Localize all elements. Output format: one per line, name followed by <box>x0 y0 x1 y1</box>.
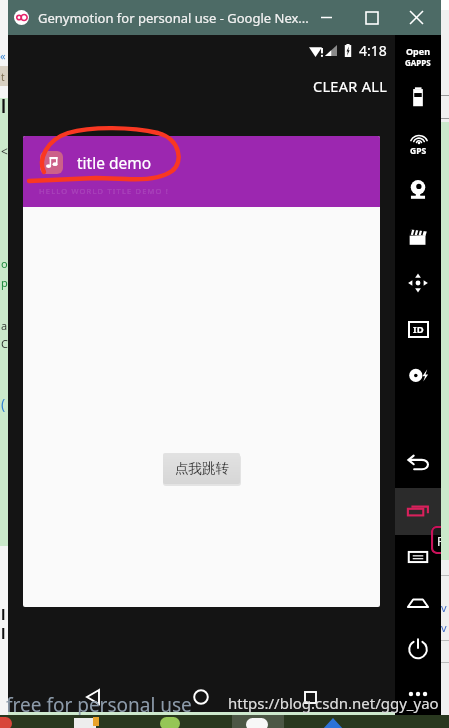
staticText: Open <box>406 45 431 57</box>
button[interactable]: GPS <box>395 123 441 169</box>
button[interactable]: 点我跳转 <box>163 453 240 484</box>
staticText: < <box>1 143 8 159</box>
staticText: ( <box>1 394 6 413</box>
staticText: Re <box>437 533 449 549</box>
staticText: t <box>1 70 5 84</box>
staticText: Genymotion for personal use - Google Nex… <box>38 9 309 27</box>
button[interactable]: Identifiers <box>395 306 441 352</box>
staticText: 点我跳转 <box>175 460 229 477</box>
staticText: o <box>1 256 8 271</box>
button[interactable]: Multi window <box>395 488 441 534</box>
button[interactable]: Screen recorder <box>395 213 441 259</box>
button[interactable]: Home <box>181 677 221 717</box>
staticText: ID <box>413 323 424 336</box>
staticText: l <box>1 623 6 643</box>
button[interactable]: Camera <box>395 167 441 213</box>
staticText: free for personal use <box>6 692 192 718</box>
button[interactable]: Volume <box>395 580 441 626</box>
button[interactable]: Open GApps <box>395 41 441 71</box>
staticText: GAPPS <box>405 57 431 68</box>
staticText: C <box>1 336 8 351</box>
button[interactable]: Back <box>73 677 113 717</box>
staticText: p <box>1 275 8 290</box>
button[interactable]: Menu <box>395 534 441 580</box>
staticText: l <box>1 95 7 118</box>
staticText: 4:18 <box>359 41 387 60</box>
button[interactable]: title demo <box>23 136 380 607</box>
staticText: HELLO WORLD TITLE DEMO ! <box>39 186 170 196</box>
staticText: title demo <box>77 152 152 173</box>
button[interactable]: CLEAR ALL <box>305 70 396 102</box>
button[interactable]: Battery <box>395 74 441 120</box>
button[interactable]: More <box>395 671 441 717</box>
staticText: v <box>441 620 447 635</box>
staticText: CLEAR ALL <box>313 76 388 96</box>
button[interactable]: Disk IO <box>395 352 441 398</box>
button[interactable]: Rotate <box>395 260 441 306</box>
staticText: v <box>441 600 447 615</box>
button[interactable]: Back <box>395 441 441 487</box>
staticText: https://blog.csdn.net/ggy_yao <box>228 693 439 713</box>
button[interactable]: Close <box>394 0 439 35</box>
staticText: l <box>1 604 6 624</box>
button[interactable]: Minimize <box>304 0 349 35</box>
staticText: GPS <box>410 145 427 157</box>
button[interactable]: Maximize <box>349 0 394 35</box>
staticText: « <box>0 48 6 63</box>
button[interactable]: Recents <box>290 677 330 717</box>
staticText: a <box>1 318 8 333</box>
button[interactable]: Power <box>395 626 441 672</box>
